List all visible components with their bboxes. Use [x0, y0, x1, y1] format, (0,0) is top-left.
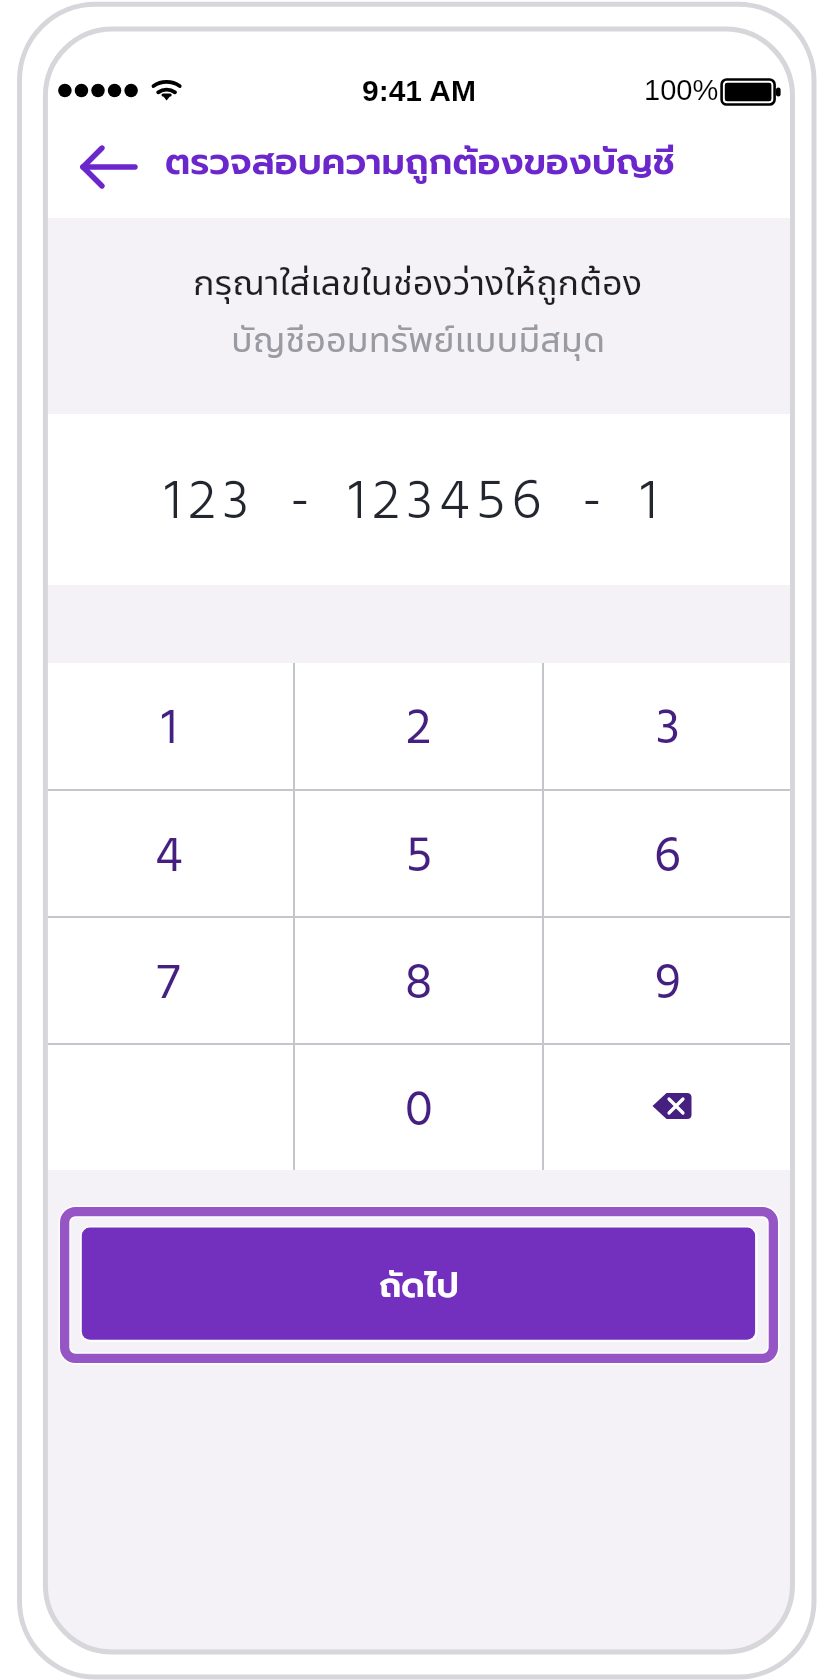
staticText: 0: [405, 1071, 433, 1153]
staticText: 123: [164, 458, 256, 549]
button[interactable]: 5: [295, 791, 542, 916]
button[interactable]: ถัดไป: [60, 1207, 778, 1363]
staticText: 8: [405, 944, 433, 1026]
button[interactable]: Backspace: [544, 1045, 791, 1170]
staticText: -: [582, 458, 609, 549]
button[interactable]: 4: [45, 791, 293, 916]
staticText: 3: [656, 689, 680, 771]
staticText: 5: [406, 817, 432, 899]
staticText: 123456: [348, 458, 548, 549]
button[interactable]: 1: [45, 663, 293, 789]
button[interactable]: 9: [544, 918, 791, 1043]
staticText: 9: [655, 944, 681, 1026]
staticText: บัญชีออมทรัพย์แบบมีสมุด: [231, 314, 606, 363]
button[interactable]: 2: [295, 663, 542, 789]
staticText: 1: [640, 458, 664, 549]
staticText: 7: [157, 944, 181, 1026]
button[interactable]: 3: [544, 663, 791, 789]
button[interactable]: [45, 1045, 293, 1170]
staticText: 6: [654, 817, 681, 899]
button[interactable]: 8: [295, 918, 542, 1043]
button[interactable]: 0: [295, 1045, 542, 1170]
button[interactable]: Back: [63, 123, 149, 209]
staticText: 9:41 AM: [362, 74, 476, 108]
staticText: ตรวจสอบความถูกต้องของบัญชี: [165, 134, 675, 189]
staticText: 2: [406, 689, 432, 771]
staticText: ถัดไป: [379, 1260, 459, 1311]
staticText: กรุณาใส่เลขในช่องว่างให้ถูกต้อง: [193, 257, 643, 306]
button[interactable]: 6: [544, 791, 791, 916]
staticText: -: [290, 458, 317, 549]
staticText: 4: [155, 817, 183, 899]
staticText: 100%: [644, 74, 719, 106]
button[interactable]: 7: [45, 918, 293, 1043]
staticText: 1: [161, 689, 178, 771]
other: Backspace: [646, 1092, 690, 1124]
